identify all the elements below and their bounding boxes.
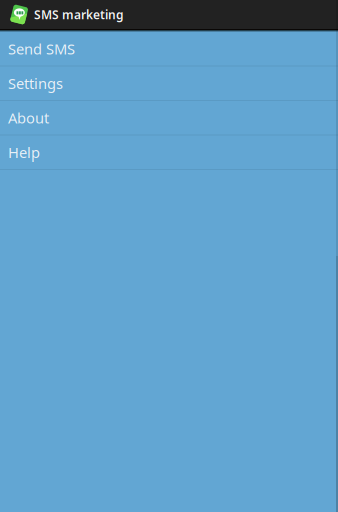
staticText: Send SMS	[8, 39, 75, 58]
button[interactable]: Settings	[0, 66, 338, 101]
button[interactable]: About	[0, 101, 338, 135]
staticText: SMS marketing	[34, 6, 124, 22]
staticText: Settings	[8, 73, 63, 93]
button[interactable]: Send SMS	[0, 32, 338, 66]
staticText: Help	[8, 142, 40, 162]
button[interactable]: Help	[0, 135, 338, 170]
staticText: About	[8, 108, 49, 127]
